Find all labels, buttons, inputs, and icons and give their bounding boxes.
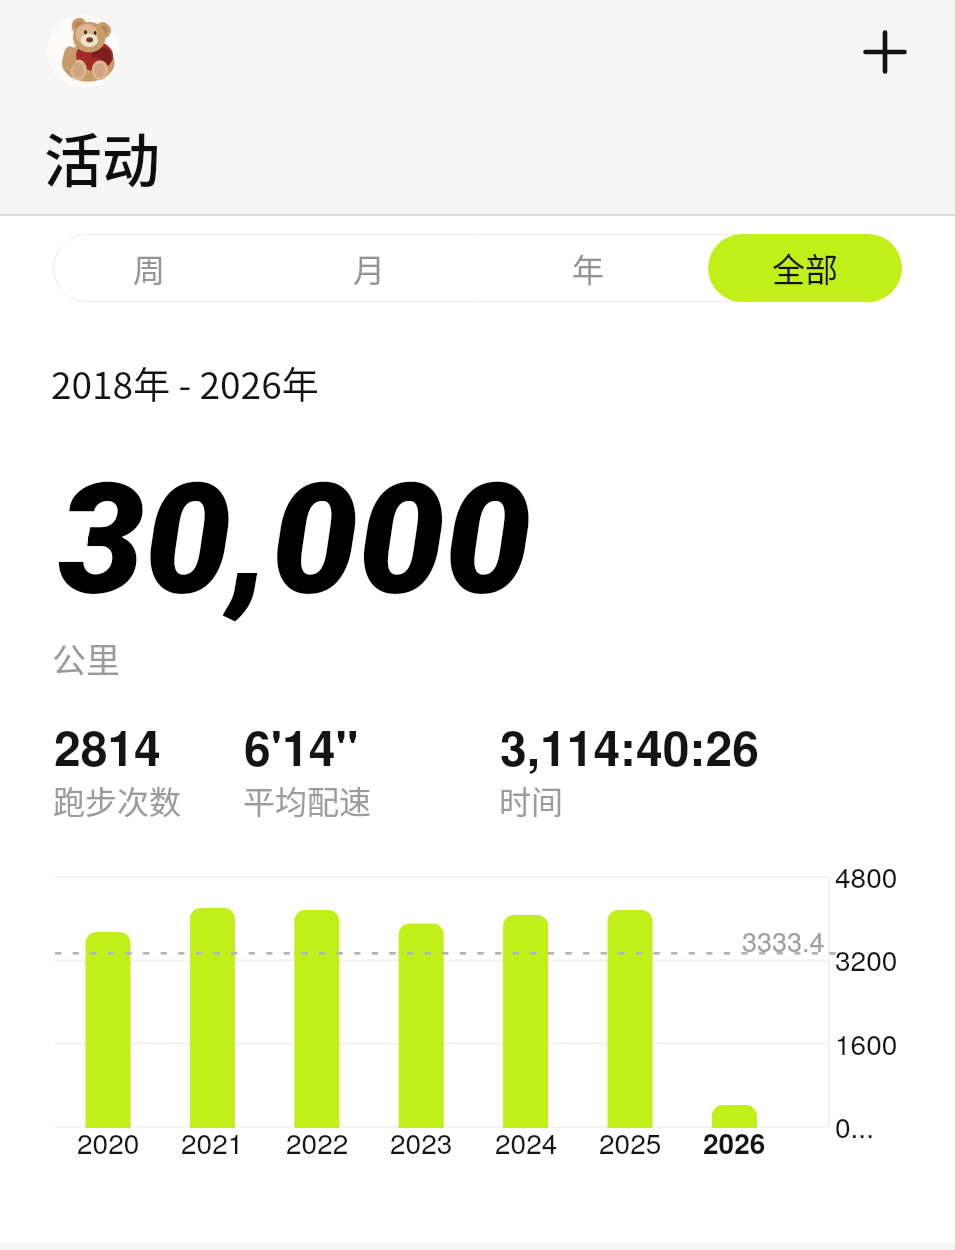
staticText: 时间 <box>499 777 564 823</box>
staticText: 6'14'' <box>244 712 359 781</box>
button[interactable]: 月 <box>271 234 489 302</box>
staticText: 公里 <box>52 634 120 683</box>
button[interactable]: 周 <box>53 234 271 302</box>
staticText: 30,000 <box>58 449 531 629</box>
staticText: 年 <box>572 245 605 291</box>
staticText: 月 <box>353 245 386 291</box>
staticText: 跑步次数 <box>53 777 182 823</box>
staticText: 3200 <box>835 939 898 979</box>
button[interactable]: 全部 <box>708 234 902 302</box>
staticText: 1600 <box>835 1023 898 1063</box>
staticText: 2025 <box>599 1122 662 1162</box>
staticText: 2022 <box>286 1122 349 1162</box>
button[interactable]: Add activity <box>843 10 927 94</box>
staticText: 2024 <box>495 1122 558 1162</box>
staticText: 2023 <box>390 1122 453 1162</box>
staticText: 平均配速 <box>243 777 372 823</box>
staticText: 2026 <box>703 1122 766 1162</box>
staticText: 全部 <box>772 244 838 292</box>
staticText: 2020 <box>77 1122 140 1162</box>
staticText: 0... <box>835 1106 874 1146</box>
staticText: 2814 <box>54 712 161 781</box>
staticText: 2021 <box>181 1122 244 1162</box>
staticText: 3333.4 <box>742 921 825 960</box>
button[interactable]: 年 <box>489 234 708 302</box>
staticText: 周 <box>133 245 166 291</box>
staticText: 2018年 - 2026年 <box>51 356 319 410</box>
button[interactable]: Profile <box>47 15 120 88</box>
staticText: 4800 <box>835 856 898 896</box>
staticText: 活动 <box>44 115 161 199</box>
staticText: 3,114:40:26 <box>500 712 759 781</box>
